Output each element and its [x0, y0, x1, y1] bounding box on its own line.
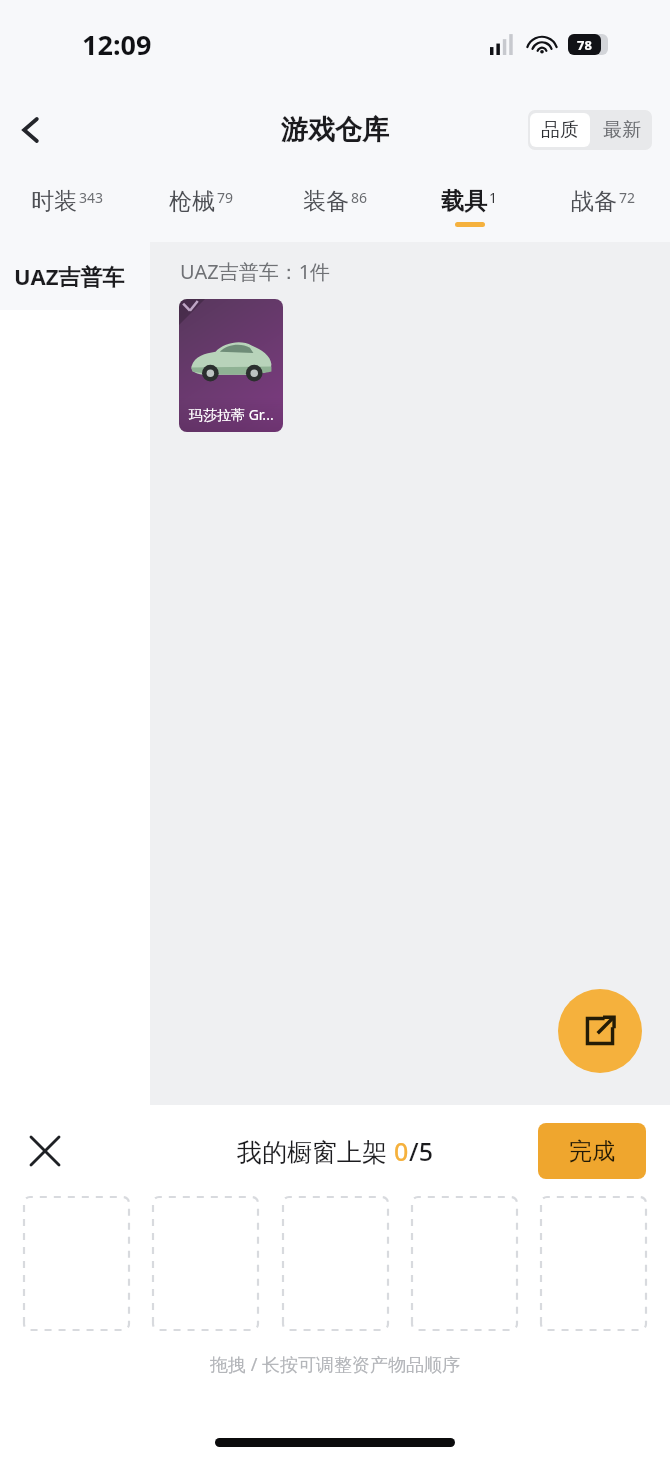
button[interactable]: 最新 — [592, 111, 652, 149]
button[interactable]: Back — [0, 98, 64, 162]
staticText: 装备 — [303, 187, 349, 216]
staticText: 12:09 — [82, 26, 152, 63]
button[interactable]: 品质 — [530, 113, 590, 147]
staticText: 78 — [577, 36, 592, 54]
staticText: 时装 — [31, 187, 77, 216]
staticText: 1 — [489, 188, 498, 207]
button[interactable]: Empty slot — [541, 1197, 646, 1330]
staticText: 最新 — [603, 118, 641, 142]
staticText: 玛莎拉蒂 Gr... — [189, 405, 274, 424]
staticText: 载具 — [441, 187, 487, 216]
button[interactable]: 装备 — [268, 172, 402, 242]
button[interactable]: Empty slot — [24, 1197, 129, 1330]
button[interactable]: 载具 — [402, 172, 536, 242]
button[interactable]: 战备 — [536, 172, 670, 242]
staticText: UAZ吉普车 — [14, 261, 125, 291]
staticText: UAZ吉普车：1件 — [180, 258, 331, 285]
staticText: 0 — [394, 1134, 409, 1168]
staticText: 86 — [351, 188, 368, 207]
button[interactable]: Empty slot — [412, 1197, 517, 1330]
staticText: 枪械 — [169, 187, 215, 216]
staticText: 343 — [79, 188, 104, 207]
button[interactable]: 玛莎拉蒂 Gr... — [179, 299, 283, 432]
button[interactable]: UAZ吉普车 — [0, 242, 150, 310]
staticText: 我的橱窗上架 — [237, 1134, 394, 1168]
button[interactable]: 时装 — [0, 172, 134, 242]
button[interactable]: 完成 — [538, 1123, 646, 1179]
button[interactable]: Empty slot — [283, 1197, 388, 1330]
staticText: 拖拽 / 长按可调整资产物品顺序 — [0, 1352, 670, 1377]
staticText: 完成 — [569, 1137, 615, 1166]
button[interactable]: Share — [558, 989, 642, 1073]
staticText: 战备 — [571, 187, 617, 216]
staticText: 品质 — [541, 118, 579, 142]
staticText: /5 — [409, 1134, 433, 1168]
staticText: 79 — [217, 188, 234, 207]
button[interactable]: Close — [14, 1120, 76, 1182]
button[interactable]: Empty slot — [153, 1197, 258, 1330]
button[interactable]: 枪械 — [134, 172, 268, 242]
staticText: 72 — [619, 188, 636, 207]
staticText: 游戏仓库 — [281, 113, 389, 147]
